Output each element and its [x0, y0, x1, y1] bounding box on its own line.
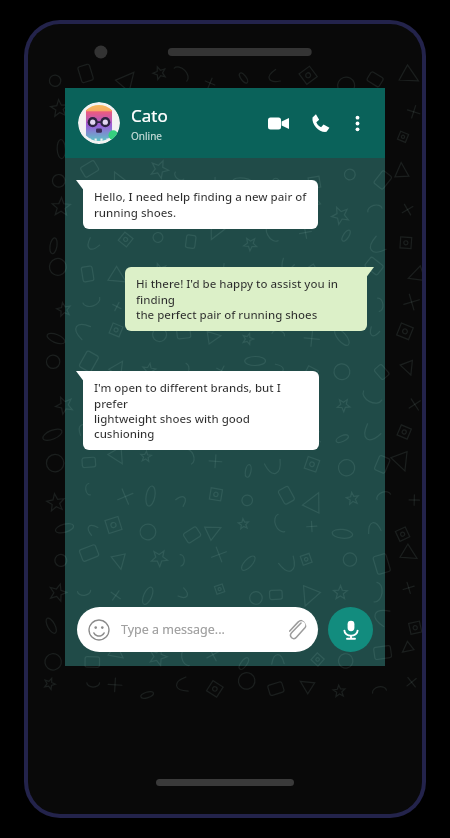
staticText: Hi there! I'd be happy to assist you in …: [136, 276, 356, 322]
button[interactable]: More options: [341, 107, 373, 139]
button[interactable]: Attach file: [284, 618, 307, 641]
button[interactable]: Profile photo: [78, 102, 120, 144]
button[interactable]: Record voice message: [328, 607, 373, 652]
staticText: Online: [131, 129, 162, 143]
button[interactable]: Emoji: [77, 607, 318, 652]
staticText: Type a message...: [121, 621, 284, 638]
button[interactable]: Hi there! I'd be happy to assist you in …: [125, 267, 367, 331]
button[interactable]: Hello, I need help finding a new pair of…: [83, 180, 318, 229]
staticText: Hello, I need help finding a new pair of…: [94, 189, 307, 220]
button[interactable]: Video call: [261, 106, 295, 140]
staticText: Cato: [131, 104, 168, 127]
button[interactable]: Cato: [131, 104, 261, 143]
button[interactable]: I'm open to different brands, but I pref…: [83, 371, 319, 450]
button[interactable]: Voice call: [303, 106, 337, 140]
staticText: I'm open to different brands, but I pref…: [94, 380, 308, 441]
button[interactable]: Emoji: [88, 619, 110, 641]
